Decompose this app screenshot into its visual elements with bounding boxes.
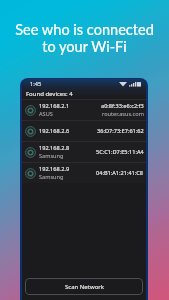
- staticText: 1:45: [30, 80, 42, 88]
- staticText: Found devices: 4: [26, 90, 73, 98]
- staticText: a0:8f:33:e6:c2:f3: [101, 102, 144, 110]
- staticText: 04:B1:A1:21:41:C8: [96, 169, 144, 177]
- staticText: 192.168.2.9: [39, 165, 70, 173]
- staticText: Samsung: [39, 152, 64, 160]
- button[interactable]: Scan Network: [25, 278, 143, 295]
- staticText: router.asus.com: [102, 110, 144, 118]
- button[interactable]: 192.168.2.1: [22, 100, 146, 120]
- staticText: 192.168.2.1: [39, 102, 70, 110]
- staticText: See who is connected to your Wi-Fi: [15, 21, 154, 55]
- staticText: 192.168.2.6: [39, 127, 70, 135]
- staticText: 192.168.2.8: [39, 144, 70, 152]
- staticText: Samsung: [39, 173, 64, 181]
- staticText: 36:D7:73:E7:61:62: [97, 127, 144, 135]
- staticText: 5C:C1:D7:E5:11:A4: [96, 148, 144, 156]
- staticText: ASUS: [39, 110, 53, 118]
- button[interactable]: 192.168.2.6: [22, 121, 146, 141]
- button[interactable]: 192.168.2.8: [22, 142, 146, 162]
- staticText: Scan Network: [65, 283, 104, 291]
- button[interactable]: 192.168.2.9: [22, 163, 146, 183]
